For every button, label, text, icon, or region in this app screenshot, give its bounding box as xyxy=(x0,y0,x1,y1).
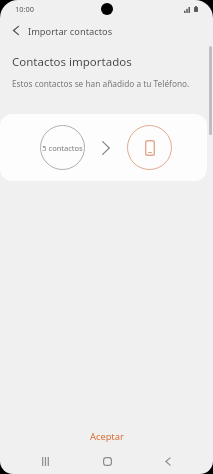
staticText: Importar contactos xyxy=(28,25,113,38)
staticText: 10:00 xyxy=(15,4,34,14)
staticText: Aceptar xyxy=(90,430,124,443)
button[interactable]: Atrás xyxy=(5,19,27,41)
button[interactable]: Atrás xyxy=(152,448,184,474)
button[interactable]: Inicio xyxy=(91,448,123,474)
staticText: 5 contactos xyxy=(42,143,83,153)
button[interactable]: 5 contactos xyxy=(40,125,85,170)
staticText: Estos contactos se han añadido a tu Telé… xyxy=(12,78,190,89)
staticText: Contactos importados xyxy=(12,54,132,70)
button[interactable]: Recientes xyxy=(29,448,61,474)
button[interactable]: Aceptar xyxy=(68,425,146,448)
button[interactable]: Teléfono xyxy=(127,125,172,170)
